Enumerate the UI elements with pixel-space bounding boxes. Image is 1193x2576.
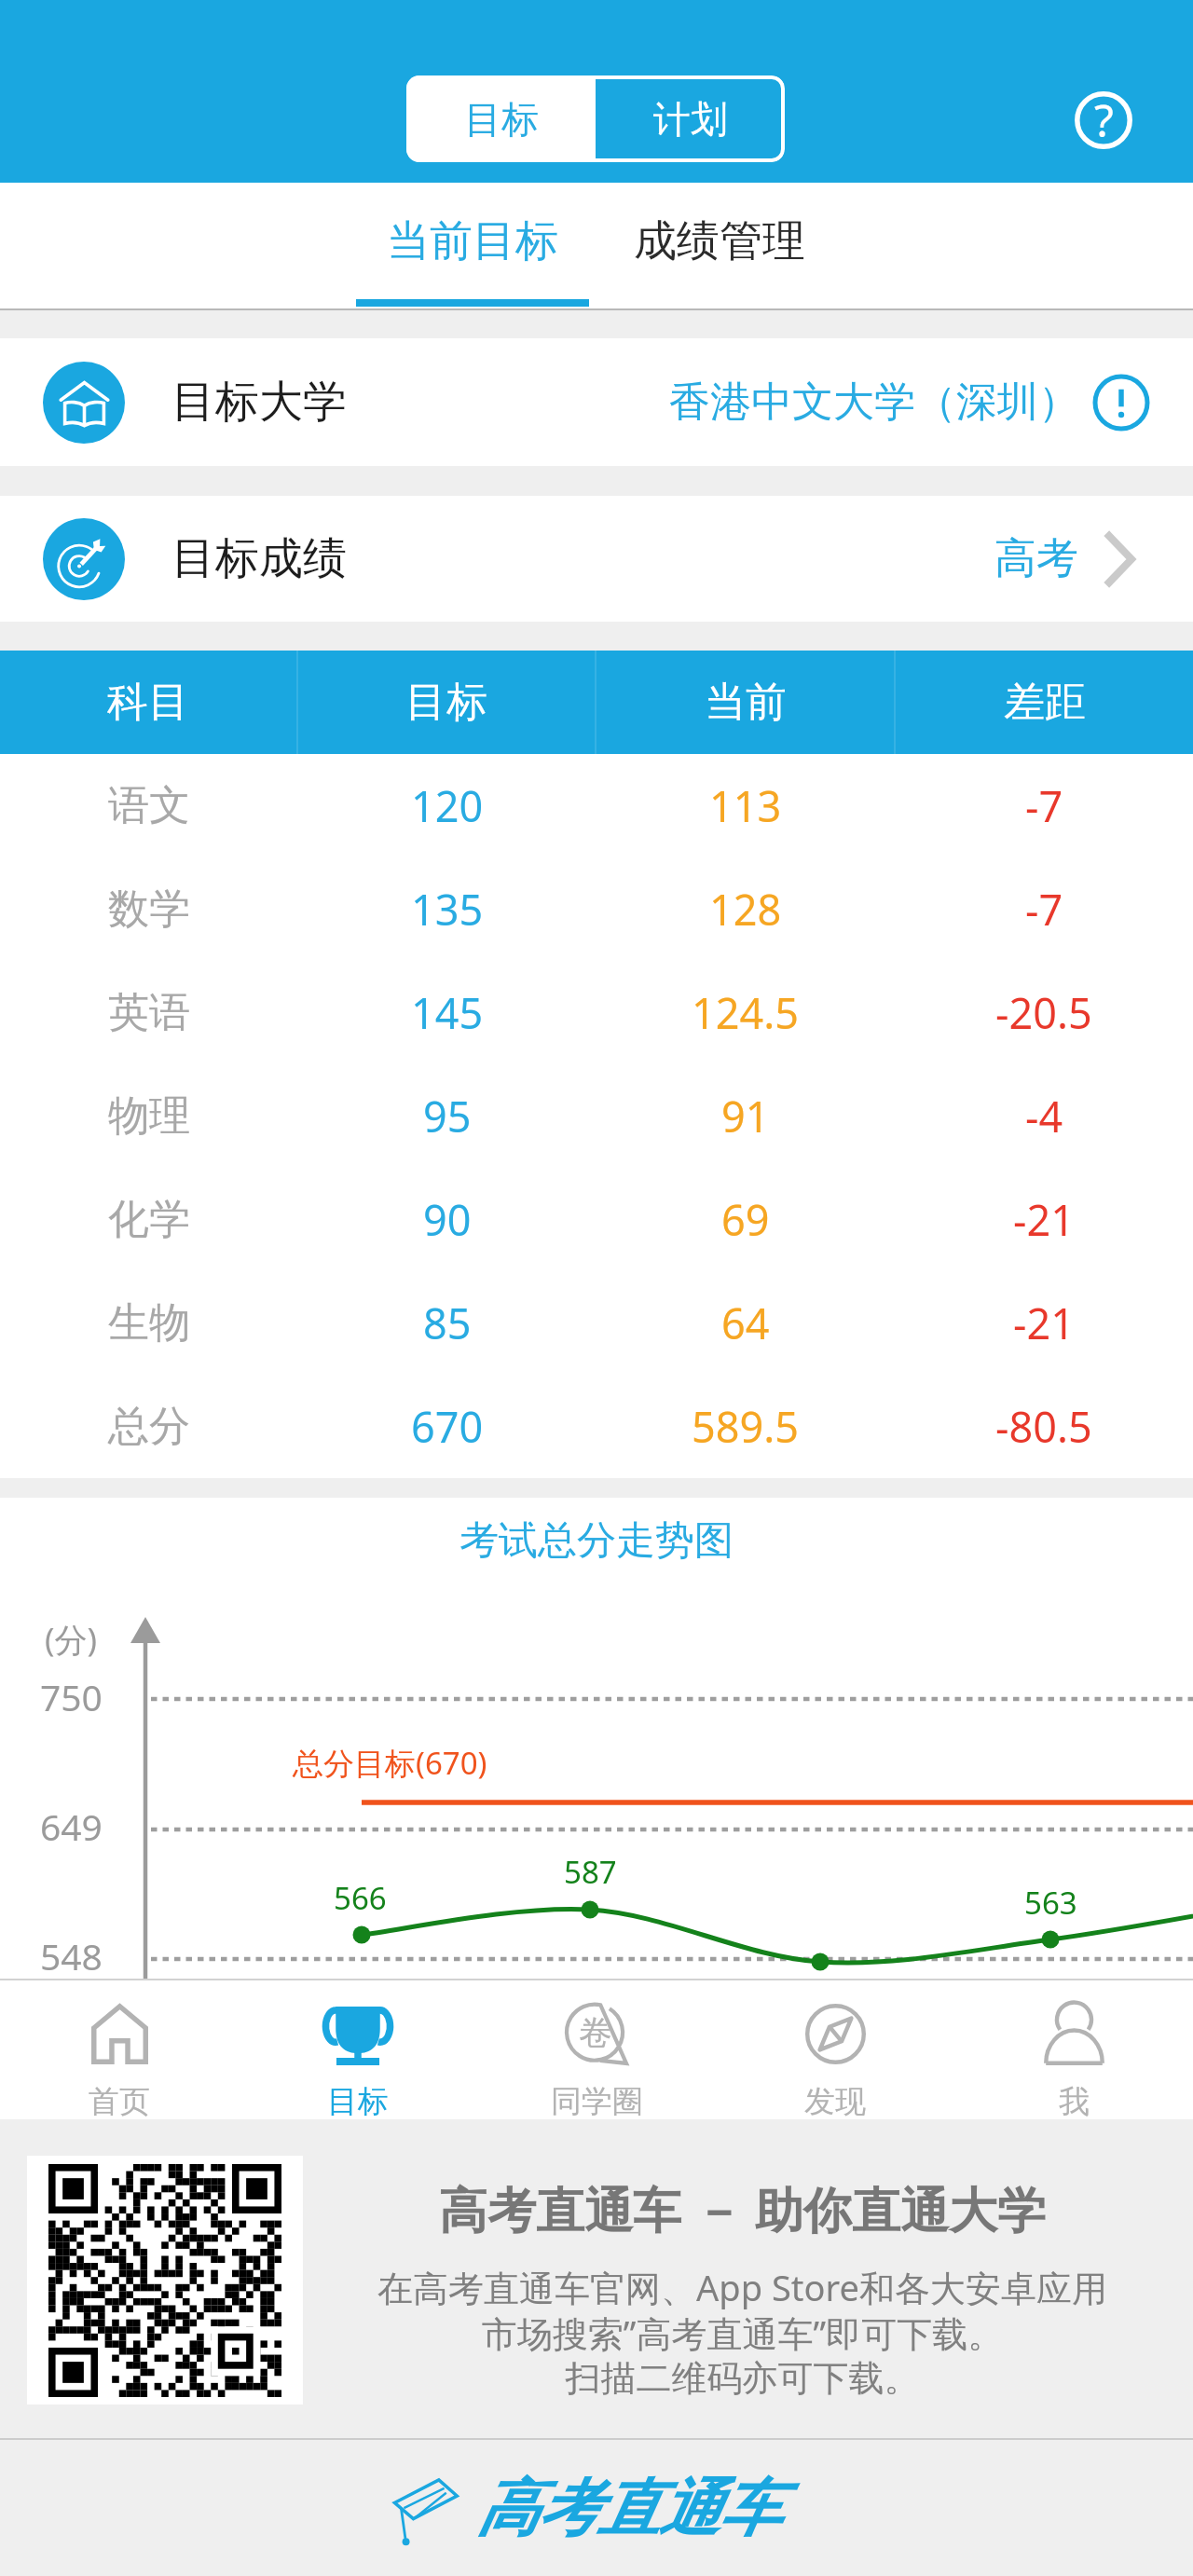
staticText: 当前	[705, 677, 787, 728]
staticText: 124.5	[692, 984, 800, 1041]
staticText: -20.5	[995, 984, 1092, 1041]
button[interactable]: 发现	[716, 1980, 954, 2119]
staticText: 587	[564, 1851, 617, 1893]
staticText: 差距	[1004, 677, 1086, 728]
staticText: 总分目标(670)	[293, 1742, 487, 1784]
staticText: 563	[1024, 1882, 1077, 1924]
staticText: 生物	[108, 1297, 190, 1349]
staticText: -7	[1025, 881, 1063, 938]
staticText: 物理	[108, 1090, 190, 1142]
staticText: 首页	[89, 2082, 150, 2121]
staticText: 145	[411, 984, 484, 1041]
staticText: -7	[1025, 777, 1063, 834]
staticText: 高考直通车	[477, 2470, 780, 2547]
staticText: 目标	[327, 2082, 389, 2121]
staticText: 85	[423, 1295, 472, 1351]
button[interactable]: 我	[954, 1980, 1193, 2119]
staticText: 69	[721, 1191, 770, 1248]
staticText: 语文	[108, 780, 190, 831]
staticText: 目标	[405, 677, 487, 728]
button[interactable]: Help	[1059, 75, 1148, 165]
staticText: 670	[411, 1398, 484, 1455]
staticText: 高考	[994, 532, 1078, 585]
staticText: 589.5	[692, 1398, 800, 1455]
staticText: ?	[1094, 89, 1114, 150]
staticText: 成绩管理	[634, 214, 805, 268]
staticText: 考试总分走势图	[459, 1516, 734, 1566]
staticText: 649	[40, 1802, 103, 1851]
button[interactable]: 成绩管理	[603, 183, 836, 310]
staticText: 当前目标	[387, 214, 558, 268]
staticText: -21	[1013, 1295, 1075, 1351]
staticText: 566	[334, 1877, 387, 1919]
button[interactable]: 首页	[0, 1980, 239, 2119]
staticText: 发现	[804, 2082, 866, 2121]
staticText: 目标成绩	[171, 531, 347, 586]
staticText: 化学	[108, 1194, 190, 1245]
button[interactable]: 目标	[406, 75, 596, 162]
button[interactable]: 目标	[239, 1980, 477, 2119]
button[interactable]: Share	[1089, 389, 1182, 482]
staticText: -21	[1013, 1191, 1075, 1248]
staticText: 同学圈	[551, 2082, 643, 2121]
button[interactable]: 目标成绩	[0, 496, 1193, 622]
staticText: 我	[1059, 2082, 1090, 2121]
staticText: 90	[423, 1191, 472, 1248]
button[interactable]: 卷	[477, 1980, 716, 2119]
button[interactable]: 计划	[596, 75, 785, 162]
staticText: 英语	[108, 987, 190, 1038]
button[interactable]: 目标大学	[0, 338, 1193, 466]
staticText: 总分	[108, 1401, 190, 1452]
staticText: -4	[1025, 1088, 1063, 1144]
staticText: (分)	[45, 1617, 98, 1662]
staticText: -80.5	[995, 1398, 1092, 1455]
staticText: 95	[423, 1088, 472, 1144]
staticText: 目标大学	[171, 375, 347, 430]
staticText: 在高考直通车官网、App Store和各大安卓应用 市场搜索”高考直通车”即可下…	[377, 2263, 1107, 2401]
staticText: 128	[709, 881, 782, 938]
staticText: 卷	[579, 2011, 612, 2053]
staticText: 64	[721, 1295, 770, 1351]
staticText: 120	[411, 777, 484, 834]
staticText: 548	[40, 1931, 103, 1980]
button[interactable]: 当前目标	[356, 183, 589, 310]
staticText: 数学	[108, 884, 190, 935]
staticText: 750	[40, 1672, 103, 1721]
staticText: 113	[709, 777, 782, 834]
staticText: 91	[721, 1088, 770, 1144]
staticText: 香港中文大学（深圳）	[669, 377, 1079, 428]
staticText: 目标	[464, 96, 539, 143]
staticText: 高考直通车 － 助你直通大学	[439, 2175, 1047, 2241]
staticText: 计划	[653, 96, 728, 143]
staticText: 135	[411, 881, 484, 938]
staticText: 科目	[107, 677, 189, 728]
